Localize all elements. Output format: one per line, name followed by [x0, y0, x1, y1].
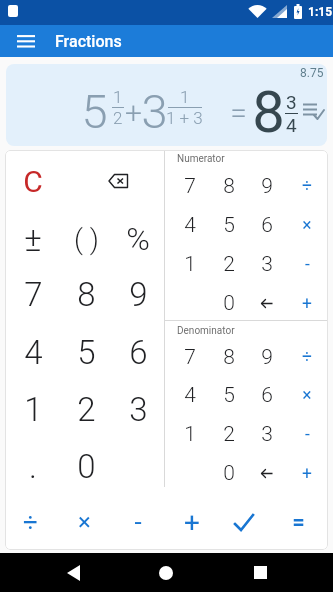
button[interactable] — [53, 553, 93, 592]
staticText: = — [292, 509, 305, 535]
staticText: 8.75 — [300, 66, 324, 80]
button[interactable]: 1 — [10, 386, 56, 432]
button[interactable]: 2 — [63, 386, 109, 432]
staticText: × — [78, 508, 91, 536]
staticText: 5 — [223, 383, 235, 408]
staticText: 2 — [223, 422, 235, 447]
staticText: C — [23, 164, 43, 199]
button[interactable]: 5 — [63, 329, 109, 375]
button[interactable]: × — [61, 499, 107, 545]
button[interactable]: 4 — [172, 377, 208, 413]
staticText: - — [134, 507, 142, 537]
staticText: ± — [24, 220, 42, 259]
staticText: 8 — [252, 78, 285, 146]
button[interactable]: ( ) — [63, 216, 109, 262]
button[interactable]: C — [10, 158, 56, 204]
staticText: 7 — [184, 174, 196, 199]
staticText: Numerator — [177, 153, 225, 165]
staticText: 9 — [261, 345, 273, 370]
staticText: ÷ — [302, 347, 312, 368]
button[interactable]: 9 — [249, 339, 285, 375]
button[interactable]: 8 — [211, 339, 247, 375]
staticText: 7 — [184, 345, 196, 370]
button[interactable] — [249, 285, 285, 321]
button[interactable]: . — [10, 443, 56, 489]
button[interactable]: 3 — [115, 386, 161, 432]
staticText: Denominator — [177, 325, 235, 337]
staticText: 7 — [24, 275, 43, 314]
button[interactable]: 4 — [10, 329, 56, 375]
button[interactable]: 0 — [63, 443, 109, 489]
button[interactable]: 2 — [211, 246, 247, 282]
staticText: - — [305, 424, 310, 445]
button[interactable] — [299, 97, 327, 127]
button[interactable]: 9 — [249, 168, 285, 204]
staticText: 3 — [141, 84, 168, 139]
button[interactable]: 0 — [211, 285, 247, 321]
button[interactable] — [221, 500, 267, 544]
staticText: 8 — [223, 174, 235, 199]
staticText: + — [184, 506, 200, 539]
staticText: 0 — [223, 291, 235, 316]
staticText: 5 — [223, 213, 235, 238]
staticText: 1 — [113, 87, 123, 107]
staticText: 2 — [223, 252, 235, 277]
button[interactable]: 1 — [172, 416, 208, 452]
button[interactable]: 3 — [249, 416, 285, 452]
staticText: 4 — [184, 383, 196, 408]
staticText: - — [305, 254, 310, 275]
button[interactable]: + — [289, 455, 325, 491]
button[interactable]: 8 — [63, 271, 109, 317]
staticText: Fractions — [55, 32, 122, 51]
staticText: 0 — [77, 447, 96, 486]
button[interactable]: × — [289, 207, 325, 243]
button[interactable]: + — [169, 499, 215, 545]
button[interactable]: 2 — [211, 416, 247, 452]
button[interactable] — [8, 29, 44, 53]
button[interactable]: ÷ — [289, 339, 325, 375]
button[interactable]: 6 — [249, 377, 285, 413]
button[interactable]: ± — [10, 216, 56, 262]
staticText: = — [230, 95, 247, 130]
staticText: + — [302, 293, 312, 314]
button[interactable] — [146, 553, 186, 592]
button[interactable]: 7 — [10, 271, 56, 317]
staticText: 1 — [180, 87, 190, 107]
staticText: 1:15 — [308, 5, 333, 19]
button[interactable]: - — [289, 416, 325, 452]
button[interactable] — [240, 553, 280, 592]
button[interactable]: 4 — [172, 207, 208, 243]
staticText: 3 — [286, 91, 297, 113]
staticText: 8 — [223, 345, 235, 370]
button[interactable]: - — [289, 246, 325, 282]
button[interactable]: 5 — [211, 207, 247, 243]
button[interactable]: 0 — [211, 455, 247, 491]
button[interactable]: = — [275, 499, 321, 545]
button[interactable] — [94, 159, 142, 203]
button[interactable]: 3 — [249, 246, 285, 282]
button[interactable]: 1 — [172, 246, 208, 282]
staticText: ÷ — [23, 507, 38, 537]
button[interactable]: 6 — [249, 207, 285, 243]
button[interactable]: ÷ — [289, 168, 325, 204]
button[interactable]: 7 — [172, 339, 208, 375]
button[interactable] — [249, 455, 285, 491]
button[interactable]: % — [115, 216, 161, 262]
staticText: 9 — [261, 174, 273, 199]
staticText: 6 — [129, 333, 148, 372]
staticText: 1 — [24, 390, 43, 429]
button[interactable]: 6 — [115, 329, 161, 375]
button[interactable]: ÷ — [7, 499, 53, 545]
button[interactable]: + — [289, 285, 325, 321]
staticText: 1 + 3 — [166, 108, 203, 128]
staticText: 2 — [113, 108, 123, 128]
button[interactable]: - — [115, 499, 161, 545]
button[interactable]: 8 — [211, 168, 247, 204]
staticText: 3 — [129, 390, 148, 429]
button[interactable]: 7 — [172, 168, 208, 204]
button[interactable]: × — [289, 377, 325, 413]
staticText: 4 — [286, 114, 297, 135]
button[interactable]: 5 — [211, 377, 247, 413]
button[interactable]: 9 — [115, 271, 161, 317]
staticText: 3 — [261, 252, 273, 277]
